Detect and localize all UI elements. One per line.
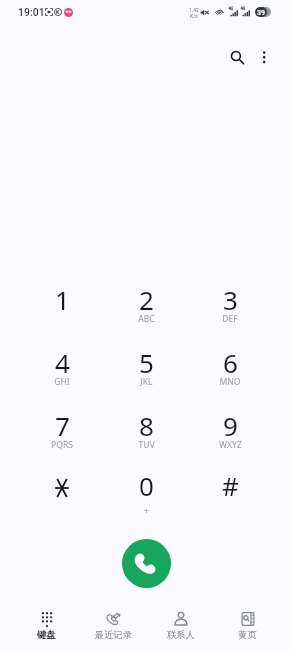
button[interactable]: 最近记录 xyxy=(80,606,147,650)
staticText: 6 xyxy=(223,345,238,380)
button[interactable]: 0 xyxy=(104,461,188,517)
staticText: DEF xyxy=(222,313,238,325)
staticText: 0 xyxy=(139,468,154,503)
staticText: WXYZ xyxy=(219,439,242,451)
button[interactable]: 5 xyxy=(104,338,188,394)
staticText: # xyxy=(222,468,239,503)
staticText: 2 xyxy=(139,282,154,317)
staticText: PQRS xyxy=(51,439,73,451)
button[interactable]: 键盘 xyxy=(13,606,80,650)
button[interactable]: 黄页 xyxy=(214,606,281,650)
staticText: + xyxy=(144,505,149,517)
staticText: 联系人 xyxy=(167,629,195,641)
button[interactable]: 3 xyxy=(188,275,272,331)
button[interactable]: 1 xyxy=(20,275,104,331)
staticText: 7 xyxy=(55,408,70,443)
staticText: 9 xyxy=(223,408,238,443)
staticText: 1 xyxy=(55,282,70,317)
button[interactable]: 8 xyxy=(104,401,188,457)
staticText: MNO xyxy=(219,376,241,388)
button[interactable]: 9 xyxy=(188,401,272,457)
button[interactable]: 6 xyxy=(188,338,272,394)
staticText: 1.42 xyxy=(189,7,199,13)
button[interactable]: 2 xyxy=(104,275,188,331)
staticText: ABC xyxy=(138,313,155,325)
staticText: 19:01 xyxy=(18,6,45,18)
staticText: K/s xyxy=(190,13,198,19)
button[interactable]: 4 xyxy=(20,338,104,394)
staticText: 4 xyxy=(55,345,70,380)
staticText: TUV xyxy=(138,439,155,451)
button[interactable]: 7 xyxy=(20,401,104,457)
staticText: JKL xyxy=(140,376,153,388)
button[interactable]: More options xyxy=(246,39,282,75)
button[interactable]: Search xyxy=(218,38,254,74)
staticText: 39 xyxy=(257,8,266,16)
button[interactable]: Call xyxy=(122,539,171,588)
staticText: 3 xyxy=(223,282,238,317)
button[interactable]: # xyxy=(188,461,272,517)
button[interactable] xyxy=(20,461,104,517)
staticText: 8 xyxy=(139,408,154,443)
staticText: 5 xyxy=(139,345,154,380)
staticText: 键盘 xyxy=(37,629,56,641)
staticText: 最近记录 xyxy=(95,629,133,641)
staticText: 黄页 xyxy=(238,629,257,641)
staticText: GHI xyxy=(54,376,70,388)
button[interactable]: 联系人 xyxy=(147,606,214,650)
